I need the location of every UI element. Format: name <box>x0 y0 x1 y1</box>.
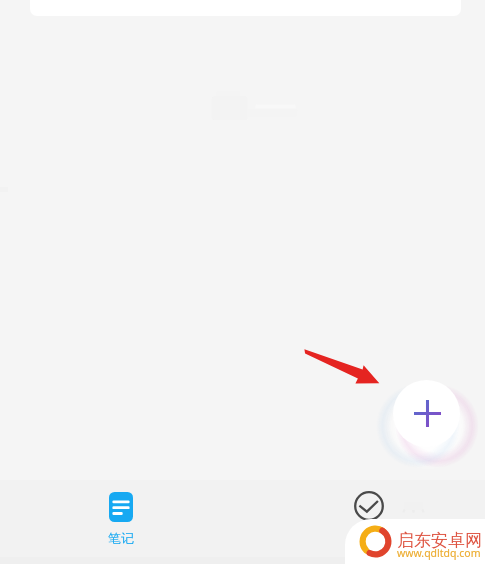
staticText: www.qdltdq.com <box>397 546 481 560</box>
staticText: 笔记 <box>108 530 134 546</box>
button[interactable]: Add note <box>393 380 460 447</box>
button[interactable]: 笔记 <box>97 480 144 557</box>
button[interactable]: Todo <box>354 491 384 521</box>
staticText: 启东安卓网 <box>397 530 482 551</box>
